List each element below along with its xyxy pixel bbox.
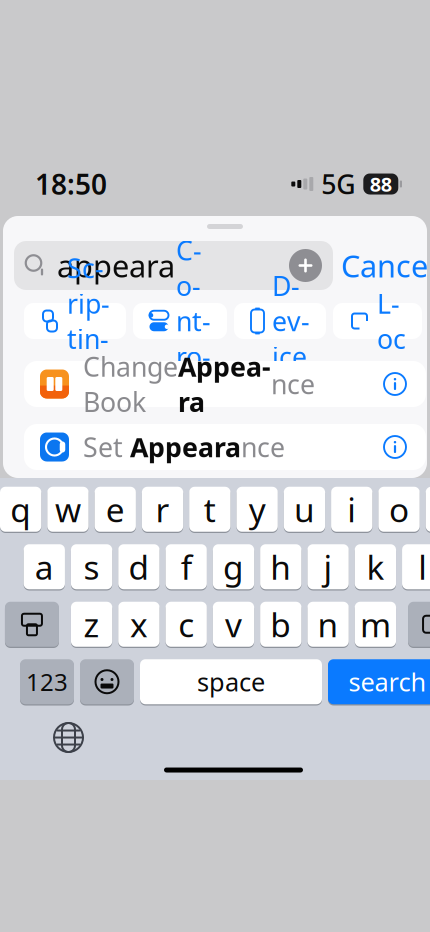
button[interactable]: Next keyboard bbox=[42, 715, 94, 759]
staticText: f bbox=[181, 545, 192, 589]
staticText: z bbox=[84, 602, 100, 646]
button[interactable]: g bbox=[213, 543, 254, 590]
button[interactable]: Cancel bbox=[341, 245, 430, 286]
staticText: w bbox=[55, 487, 81, 531]
button[interactable]: Shift bbox=[5, 600, 59, 648]
staticText: search bbox=[348, 665, 426, 698]
staticText: 88 bbox=[370, 171, 392, 197]
button[interactable]: Details for Change Book Appearance bbox=[383, 372, 407, 396]
staticText: v bbox=[225, 602, 242, 646]
staticText: l bbox=[418, 545, 427, 589]
staticText: Device bbox=[272, 268, 310, 374]
button[interactable]: search bbox=[328, 658, 430, 705]
button[interactable]: b bbox=[260, 600, 301, 648]
staticText: x bbox=[130, 602, 148, 646]
staticText: s bbox=[84, 545, 100, 589]
button[interactable]: Device bbox=[234, 303, 326, 339]
button[interactable]: v bbox=[213, 600, 254, 648]
button[interactable]: x bbox=[118, 600, 160, 648]
button[interactable]: a bbox=[24, 543, 65, 590]
staticText: space bbox=[197, 665, 265, 698]
staticText: 123 bbox=[26, 666, 68, 698]
button[interactable]: Details for Set Appearance bbox=[383, 435, 407, 459]
button[interactable]: Set bbox=[24, 424, 426, 470]
staticText: 18:50 bbox=[35, 165, 107, 203]
button[interactable]: space bbox=[140, 658, 322, 705]
staticText: o bbox=[389, 487, 409, 531]
staticText: Change Book bbox=[83, 349, 178, 419]
staticText: c bbox=[178, 602, 194, 646]
button[interactable]: t bbox=[189, 485, 230, 533]
button[interactable]: Scripting bbox=[24, 303, 126, 339]
button[interactable]: h bbox=[260, 543, 301, 590]
button[interactable]: Change Book bbox=[24, 361, 426, 407]
staticText: d bbox=[128, 545, 149, 589]
staticText: k bbox=[366, 545, 384, 589]
staticText: Appeara bbox=[178, 349, 271, 419]
button[interactable]: l bbox=[402, 543, 430, 590]
staticText: nce bbox=[241, 429, 285, 465]
staticText: 5G bbox=[321, 166, 355, 202]
staticText: t bbox=[204, 487, 216, 531]
staticText: Scripting bbox=[67, 250, 110, 392]
button[interactable]: Delete bbox=[408, 600, 430, 648]
button[interactable]: p bbox=[426, 485, 430, 533]
staticText: g bbox=[223, 545, 244, 589]
staticText: nce bbox=[271, 366, 315, 402]
button[interactable]: n bbox=[307, 600, 349, 648]
staticText: a bbox=[35, 545, 54, 589]
button[interactable]: o bbox=[378, 485, 420, 533]
button[interactable]: d bbox=[118, 543, 159, 590]
button[interactable]: m bbox=[355, 600, 396, 648]
staticText: b bbox=[270, 602, 291, 646]
staticText: m bbox=[360, 602, 391, 646]
staticText: n bbox=[318, 602, 339, 646]
button[interactable]: 123 bbox=[20, 658, 74, 705]
button[interactable]: z bbox=[71, 600, 112, 648]
button[interactable]: w bbox=[47, 485, 89, 533]
staticText: j bbox=[324, 545, 333, 589]
staticText: Set bbox=[83, 429, 130, 465]
staticText: Loc bbox=[377, 286, 406, 356]
button[interactable]: k bbox=[355, 543, 396, 590]
staticText: u bbox=[294, 487, 315, 531]
button[interactable]: e bbox=[95, 485, 136, 533]
button[interactable]: r bbox=[142, 485, 183, 533]
button[interactable]: y bbox=[236, 485, 278, 533]
button[interactable]: Controls bbox=[133, 303, 227, 339]
button[interactable]: u bbox=[284, 485, 325, 533]
staticText: Cancel bbox=[341, 245, 430, 286]
staticText: r bbox=[155, 487, 169, 531]
staticText: q bbox=[10, 487, 31, 531]
button[interactable]: j bbox=[307, 543, 349, 590]
staticText: appeara bbox=[57, 245, 175, 286]
staticText: Controls bbox=[176, 232, 211, 410]
button[interactable]: Clear text bbox=[289, 249, 322, 282]
button[interactable]: i bbox=[331, 485, 372, 533]
staticText: h bbox=[270, 545, 291, 589]
button[interactable]: q bbox=[0, 485, 41, 533]
button[interactable]: s bbox=[71, 543, 112, 590]
button[interactable]: Emoji bbox=[80, 658, 134, 705]
button[interactable]: Loc bbox=[333, 303, 422, 339]
staticText: y bbox=[249, 487, 266, 531]
staticText: Appeara bbox=[130, 429, 241, 465]
button[interactable]: c bbox=[166, 600, 207, 648]
staticText: e bbox=[106, 487, 125, 531]
staticText: i bbox=[347, 487, 356, 531]
button[interactable]: f bbox=[165, 543, 207, 590]
